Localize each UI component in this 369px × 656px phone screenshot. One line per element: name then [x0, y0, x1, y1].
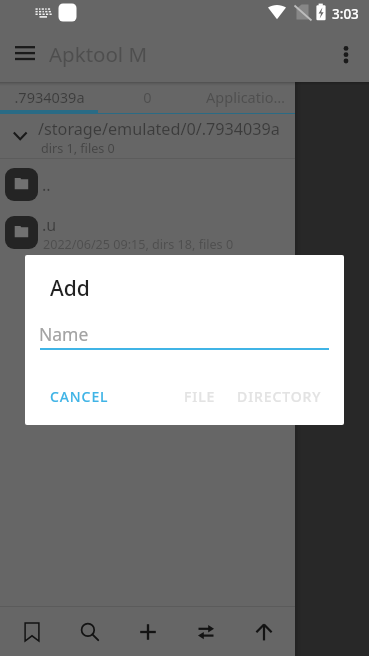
- staticText: CANCEL: [50, 387, 109, 406]
- button[interactable]: Search: [61, 607, 119, 656]
- button[interactable]: .7934039a: [0, 82, 98, 114]
- button[interactable]: /storage/emulated/0/.7934039a: [0, 114, 295, 159]
- staticText: 3:03: [332, 5, 359, 23]
- button[interactable]: .u: [0, 207, 295, 255]
- staticText: .u: [42, 214, 57, 236]
- staticText: DIRECTORY: [237, 387, 322, 406]
- staticText: /storage/emulated/0/.7934039a: [38, 118, 280, 140]
- staticText: ..: [42, 174, 51, 196]
- button[interactable]: More options: [323, 32, 368, 77]
- button[interactable]: 0: [98, 82, 196, 114]
- staticText: Applicatio…: [206, 87, 285, 107]
- staticText: Apktool M: [49, 40, 148, 68]
- staticText: 2022/06/25 09:15, dirs 18, files 0: [43, 236, 234, 253]
- button[interactable]: Applicatio…: [196, 82, 295, 114]
- staticText: .7934039a: [14, 87, 85, 107]
- staticText: 0: [143, 87, 152, 107]
- button[interactable]: Add: [119, 607, 177, 656]
- button[interactable]: Up: [235, 607, 293, 656]
- button[interactable]: DIRECTORY: [229, 378, 330, 415]
- staticText: Add: [50, 274, 90, 303]
- staticText: dirs 1, files 0: [41, 140, 115, 157]
- button[interactable]: Bookmark: [3, 607, 61, 656]
- staticText: Name: [39, 322, 89, 346]
- button[interactable]: ..: [0, 159, 295, 207]
- button[interactable]: Open navigation drawer: [2, 33, 47, 78]
- staticText: FILE: [184, 387, 216, 406]
- button[interactable]: Sort: [177, 607, 235, 656]
- button[interactable]: FILE: [176, 378, 224, 415]
- button[interactable]: CANCEL: [42, 378, 117, 415]
